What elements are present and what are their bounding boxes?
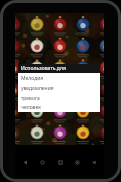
button[interactable]: Back: [18, 155, 32, 169]
button[interactable]: Recent apps: [53, 155, 67, 169]
button[interactable]: человек: [18, 103, 100, 112]
staticText: Использовать для: [21, 65, 66, 72]
button[interactable]: Volume: [87, 155, 101, 169]
staticText: Мелодия: [21, 75, 44, 82]
staticText: тревога: [21, 95, 40, 102]
staticText: человек: [21, 104, 41, 111]
button[interactable]: тревога: [18, 93, 100, 103]
button[interactable]: Home: [35, 155, 49, 169]
button[interactable]: Мелодия: [18, 73, 100, 83]
button[interactable]: Screenshot: [70, 155, 84, 169]
button[interactable]: уведомления: [18, 83, 100, 93]
staticText: уведомления: [21, 85, 54, 92]
